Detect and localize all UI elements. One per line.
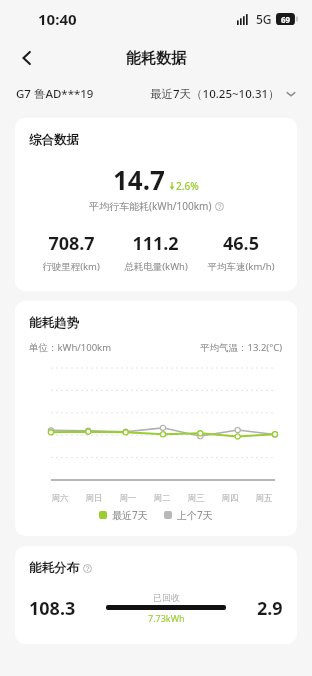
staticText: 708.7 [48,231,95,256]
staticText: 平均气温：13.2(°C) [200,341,283,354]
staticText: 已回收 [153,592,180,603]
staticText: 46.5 [223,231,259,256]
button[interactable]: 最近7天 [99,508,148,522]
staticText: 5G [256,11,272,27]
button[interactable]: 上个7天 [164,508,213,522]
staticText: 周二 [145,493,179,504]
staticText: 周三 [179,493,213,504]
staticText: 111.2 [132,231,179,256]
staticText: 2.9 [257,596,283,621]
staticText: 能耗数据 [126,49,186,68]
staticText: 2.6% [176,179,199,193]
staticText: 108.3 [29,596,76,621]
staticText: 平均车速(km/h) [207,260,275,273]
staticText: 周五 [247,493,281,504]
staticText: 周六 [43,493,77,504]
staticText: 周日 [77,493,111,504]
staticText: 上个7天 [177,508,213,522]
staticText: 14.7 [113,162,165,197]
staticText: 周四 [213,493,247,504]
staticText: 综合数据 [29,132,79,148]
staticText: 行驶里程(km) [42,260,100,273]
staticText: 最近7天 [112,508,148,522]
staticText: 最近7天（10.25~10.31） [150,86,280,102]
staticText: 10:40 [38,9,77,29]
staticText: 能耗趋势 [29,315,79,331]
staticText: 周一 [111,493,145,504]
staticText: 总耗电量(kWh) [124,260,188,273]
staticText: 7.73kWh [148,612,185,624]
staticText: G7 鲁AD***19 [16,86,94,102]
button[interactable]: Back [10,41,44,75]
staticText: 69 [281,14,291,25]
staticText: 能耗分布 [29,560,79,576]
staticText: 平均行车能耗(kWh/100km) [89,199,212,213]
staticText: 单位：kWh/100km [29,341,112,354]
button[interactable]: 最近7天（10.25~10.31） [150,86,296,102]
